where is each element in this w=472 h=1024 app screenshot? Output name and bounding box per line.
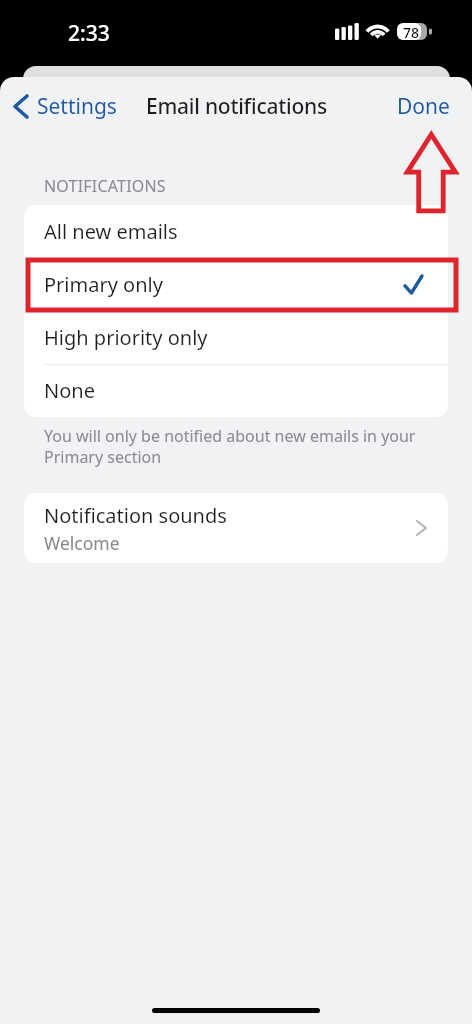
other: Cellular signal	[334, 23, 359, 40]
staticText: Notification sounds	[44, 502, 227, 529]
staticText: You will only be notified about new emai…	[44, 425, 420, 468]
staticText: High priority only	[44, 324, 208, 351]
button[interactable]: Primary only	[24, 258, 448, 311]
staticText: NOTIFICATIONS	[44, 175, 166, 197]
staticText: Settings	[37, 92, 117, 121]
staticText: None	[44, 377, 95, 404]
staticText: Done	[397, 92, 450, 121]
button[interactable]: All new emails	[24, 205, 448, 258]
button[interactable]: Settings	[0, 77, 127, 135]
staticText: Primary only	[44, 271, 163, 298]
button[interactable]: Notification sounds	[24, 493, 448, 563]
staticText: Welcome	[44, 531, 120, 555]
staticText: All new emails	[44, 218, 178, 245]
button[interactable]: Done	[375, 77, 472, 135]
staticText: Email notifications	[146, 92, 327, 121]
button[interactable]: None	[24, 364, 448, 417]
button[interactable]: High priority only	[24, 311, 448, 364]
staticText: 2:33	[68, 19, 110, 48]
other: Open notification sounds	[417, 521, 426, 535]
staticText: 78	[403, 23, 420, 40]
other: Wi-Fi	[366, 22, 390, 40]
